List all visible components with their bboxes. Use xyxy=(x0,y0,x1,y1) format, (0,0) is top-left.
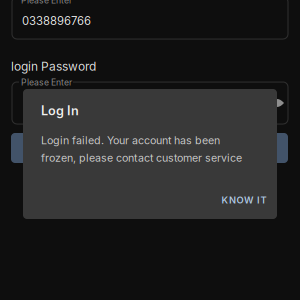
button[interactable]: KNOW IT xyxy=(208,186,280,214)
staticText: KNOW IT xyxy=(221,194,266,206)
button[interactable]: Show password xyxy=(264,92,288,113)
staticText: Login failed. Your account has been froz… xyxy=(41,134,242,164)
staticText: Please Enter xyxy=(21,0,72,5)
staticText: Please Enter xyxy=(21,77,72,87)
staticText: Log In xyxy=(41,103,79,118)
button[interactable] xyxy=(11,133,288,163)
staticText: login Password xyxy=(11,59,96,73)
staticText: 0338896766 xyxy=(22,14,91,28)
